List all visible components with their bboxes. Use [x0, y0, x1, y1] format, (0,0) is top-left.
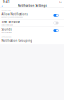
button[interactable]: Allow Notifications — [0, 12, 64, 19]
staticText: Sounds — [1, 28, 11, 31]
staticText: Play an alert tone — [1, 32, 12, 33]
staticText: Notification Grouping — [1, 39, 32, 42]
staticText: Deliver immediately — [1, 24, 13, 26]
staticText: ıll ⌁ ▰ — [59, 1, 61, 3]
button[interactable]: Notification Grouping — [0, 39, 64, 42]
staticText: Notification Settings — [17, 4, 46, 7]
staticText: 9:41 — [3, 0, 10, 4]
staticText: ‹ — [2, 3, 3, 8]
button[interactable]: Time Sensitive — [0, 19, 64, 27]
button[interactable]: Back — [0, 4, 5, 7]
staticText: Banners, sounds and badges — [1, 16, 23, 18]
staticText: Time Sensitive — [1, 20, 20, 24]
staticText: Allow Notifications — [1, 12, 27, 16]
staticText: NOTIFICATIONS — [1, 9, 11, 11]
button[interactable]: Sounds — [0, 27, 64, 34]
staticText: APPEARANCE — [1, 36, 11, 38]
